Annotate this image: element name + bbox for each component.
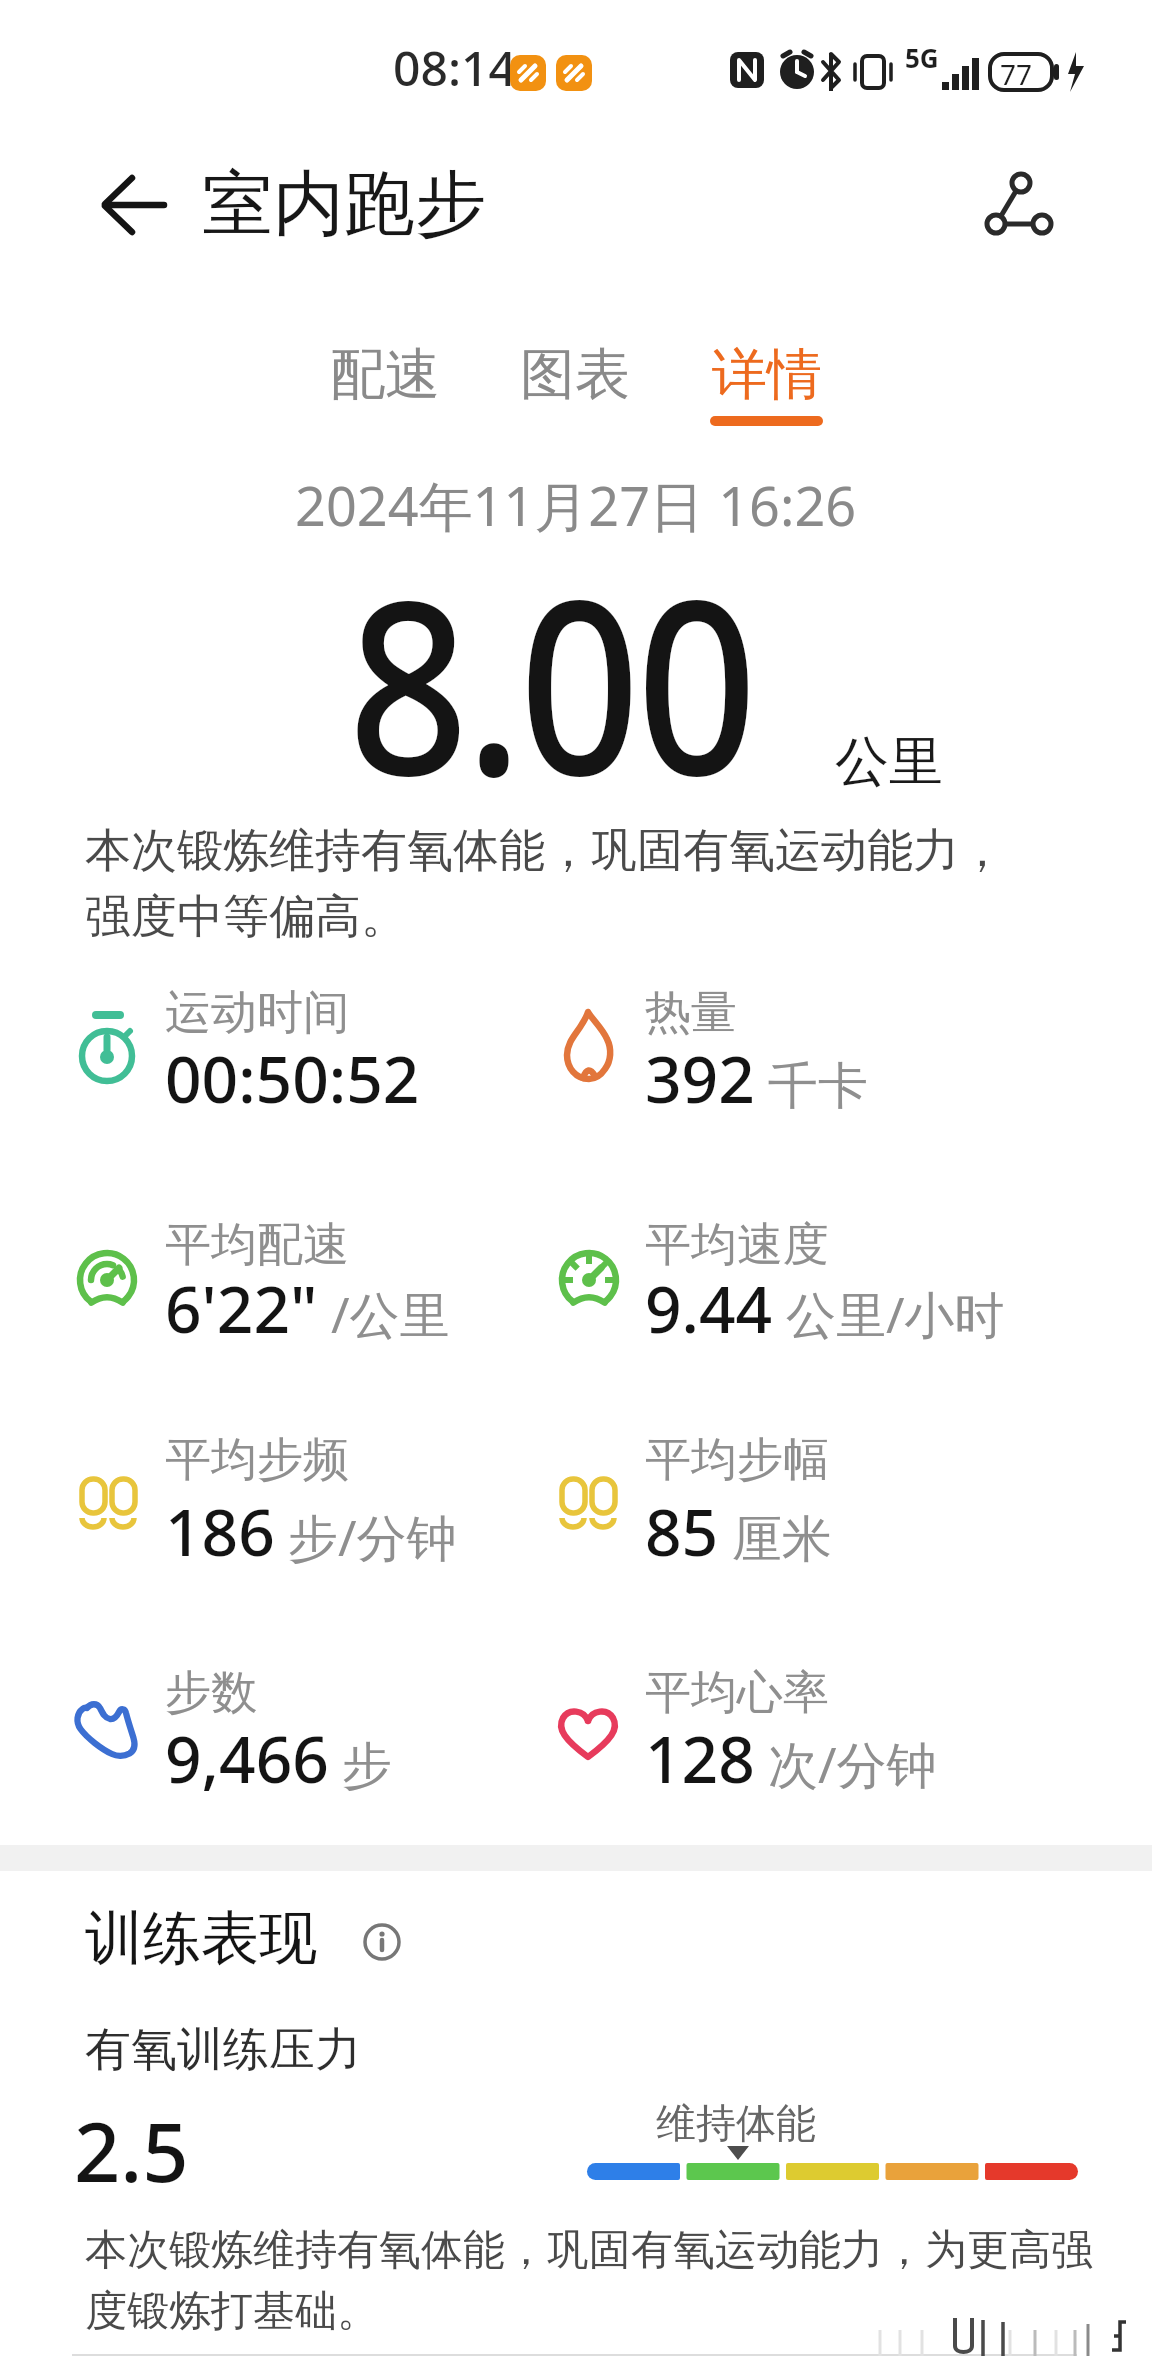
staticText: 步/分钟 bbox=[288, 1503, 457, 1571]
staticText: 训练表现 bbox=[85, 1902, 317, 1975]
staticText: 步数 bbox=[165, 1664, 257, 1722]
staticText: 详情 bbox=[712, 340, 822, 409]
staticText: 9,466 bbox=[165, 1715, 329, 1802]
staticText: 配速 bbox=[330, 340, 440, 409]
staticText: 128 bbox=[645, 1715, 755, 1802]
staticText: 77 bbox=[1000, 55, 1033, 93]
staticText: /公里 bbox=[331, 1280, 450, 1348]
staticText: 平均步幅 bbox=[645, 1431, 829, 1489]
staticText: 图表 bbox=[520, 340, 630, 409]
staticText: 85 bbox=[645, 1488, 719, 1575]
staticText: 平均心率 bbox=[645, 1664, 829, 1722]
staticText: 平均步频 bbox=[165, 1431, 349, 1489]
staticText: 392 bbox=[645, 1035, 755, 1122]
staticText: 公里 bbox=[835, 728, 943, 796]
staticText: 2.5 bbox=[74, 2095, 189, 2205]
staticText: 8.00 bbox=[348, 518, 755, 845]
staticText: 维持体能 bbox=[656, 2098, 816, 2148]
staticText: 5G bbox=[905, 40, 939, 75]
button[interactable] bbox=[980, 165, 1060, 245]
staticText: 186 bbox=[165, 1488, 275, 1575]
staticText: 有氧训练压力 bbox=[85, 2021, 361, 2079]
staticText: 公里/小时 bbox=[786, 1280, 1005, 1348]
button[interactable] bbox=[86, 165, 178, 245]
button[interactable]: 配速 bbox=[300, 334, 470, 414]
staticText: 运动时间 bbox=[165, 984, 349, 1042]
staticText: 次/分钟 bbox=[768, 1730, 937, 1798]
staticText: 步 bbox=[342, 1735, 392, 1798]
staticText: 热量 bbox=[645, 984, 737, 1042]
staticText: 千卡 bbox=[768, 1055, 868, 1118]
staticText: 本次锻炼维持有氧体能，巩固有氧运动能力，为更高强 度锻炼打基础。 bbox=[85, 2224, 1093, 2337]
staticText: 08:14 bbox=[393, 35, 516, 100]
staticText: 9.44 bbox=[645, 1265, 773, 1352]
button[interactable]: 详情 bbox=[682, 334, 852, 414]
staticText: 平均速度 bbox=[645, 1216, 829, 1274]
staticText: 6'22" bbox=[165, 1265, 318, 1352]
button[interactable]: 图表 bbox=[490, 334, 660, 414]
button[interactable] bbox=[362, 1922, 406, 1966]
staticText: 本次锻炼维持有氧体能，巩固有氧运动能力， 强度中等偏高。 bbox=[85, 822, 1005, 946]
staticText: 平均配速 bbox=[165, 1216, 349, 1274]
staticText: 厘米 bbox=[732, 1508, 832, 1571]
staticText: 2024年11月27日 16:26 bbox=[295, 468, 857, 542]
staticText: 室内跑步 bbox=[202, 160, 486, 249]
staticText: 00:50:52 bbox=[165, 1035, 420, 1122]
